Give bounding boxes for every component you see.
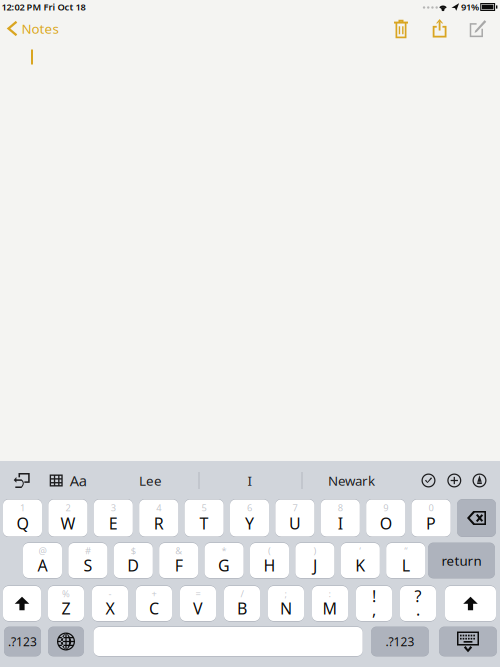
button[interactable]: Delete	[457, 499, 496, 537]
button[interactable]: )	[295, 542, 334, 578]
button[interactable]: ‘	[341, 542, 380, 578]
staticText: 9	[383, 501, 388, 514]
button[interactable]: Add attachment	[442, 463, 466, 497]
button[interactable]: 0	[412, 499, 451, 537]
button[interactable]: return	[428, 542, 495, 578]
staticText: 1	[20, 501, 25, 514]
staticText: -	[108, 587, 111, 600]
staticText: .?123	[385, 633, 414, 649]
staticText: I	[247, 472, 252, 489]
staticText: I	[338, 513, 343, 534]
staticText: /	[240, 587, 243, 600]
button[interactable]: !	[356, 585, 392, 621]
staticText: R	[154, 513, 164, 534]
button[interactable]: 9	[366, 499, 405, 537]
button[interactable]: Done	[416, 463, 440, 497]
staticText: ;	[284, 587, 287, 600]
staticText: J	[313, 555, 317, 576]
button[interactable]: &	[159, 542, 198, 578]
staticText: D	[127, 555, 139, 576]
button[interactable]: 6	[230, 499, 269, 537]
staticText: Lee	[139, 472, 162, 489]
button[interactable]: 4	[139, 499, 178, 537]
button[interactable]: ;	[268, 585, 304, 621]
staticText: 3	[111, 501, 116, 514]
staticText: P	[426, 513, 436, 534]
button[interactable]: $	[114, 542, 153, 578]
staticText: G	[218, 555, 230, 576]
button[interactable]: #	[68, 542, 107, 578]
button[interactable]: “	[386, 542, 425, 578]
staticText: Notes	[21, 20, 58, 37]
staticText: 4	[156, 501, 161, 514]
button[interactable]: Undo	[6, 463, 38, 497]
staticText: F	[175, 555, 183, 576]
button[interactable]: %	[48, 585, 84, 621]
staticText: Z	[61, 598, 70, 619]
staticText: !	[372, 585, 376, 607]
staticText: .	[416, 599, 420, 620]
staticText: B	[237, 598, 247, 619]
button[interactable]: 7	[275, 499, 314, 537]
staticText: O	[380, 513, 392, 534]
staticText: U	[289, 513, 301, 534]
button[interactable]: Formatting	[64, 463, 92, 497]
staticText: *	[222, 544, 227, 557]
button[interactable]: +	[136, 585, 172, 621]
staticText: #	[85, 544, 91, 557]
staticText: 91%	[461, 1, 479, 13]
button[interactable]: 3	[94, 499, 133, 537]
button[interactable]: /	[224, 585, 260, 621]
button[interactable]: 1	[3, 499, 42, 537]
staticText: Y	[245, 513, 254, 534]
staticText: K	[355, 555, 365, 576]
staticText: 7	[292, 501, 297, 514]
button[interactable]: Shift	[3, 585, 41, 621]
staticText: V	[193, 598, 203, 619]
button[interactable]: I	[202, 465, 298, 495]
button[interactable]: Lee	[102, 465, 198, 495]
staticText: ?	[414, 585, 421, 607]
staticText: Q	[16, 513, 28, 534]
button[interactable]: @	[23, 542, 62, 578]
staticText: E	[109, 513, 118, 534]
button[interactable]: Next keyboard	[48, 626, 84, 656]
button[interactable]: Markup	[467, 463, 491, 497]
button[interactable]: -	[92, 585, 128, 621]
button[interactable]: (	[250, 542, 289, 578]
staticText: S	[83, 555, 92, 576]
staticText: Fri Oct 18	[43, 1, 85, 13]
staticText: )	[313, 544, 316, 557]
button[interactable]: Space	[94, 626, 363, 656]
button[interactable]: Delete note	[384, 14, 418, 44]
staticText: 8	[338, 501, 343, 514]
staticText: H	[263, 555, 275, 576]
button[interactable]: Insert table	[42, 463, 70, 497]
staticText: =	[195, 587, 200, 600]
staticText: L	[402, 555, 410, 576]
button[interactable]: =	[180, 585, 216, 621]
staticText: 12:02 PM	[1, 1, 41, 13]
button[interactable]: Hide keyboard	[439, 626, 497, 656]
button[interactable]: ?	[400, 585, 436, 621]
staticText: 5	[202, 501, 207, 514]
button[interactable]: Share	[423, 13, 457, 43]
staticText: (	[268, 544, 271, 557]
button[interactable]: :	[312, 585, 348, 621]
staticText: C	[149, 598, 159, 619]
button[interactable]: 5	[185, 499, 224, 537]
button[interactable]: *	[205, 542, 244, 578]
button[interactable]: Shift	[445, 585, 496, 621]
staticText: N	[280, 598, 292, 619]
button[interactable]: 2	[48, 499, 87, 537]
button[interactable]: .?123	[4, 626, 41, 656]
staticText: :	[328, 587, 331, 600]
button[interactable]: .?123	[371, 626, 429, 656]
staticText: 0	[429, 501, 434, 514]
button[interactable]: Notes	[0, 13, 66, 43]
staticText: Newark	[328, 472, 375, 489]
staticText: &	[175, 544, 182, 557]
button[interactable]: 8	[321, 499, 360, 537]
button[interactable]: New note	[461, 14, 495, 44]
button[interactable]: Newark	[303, 465, 399, 495]
